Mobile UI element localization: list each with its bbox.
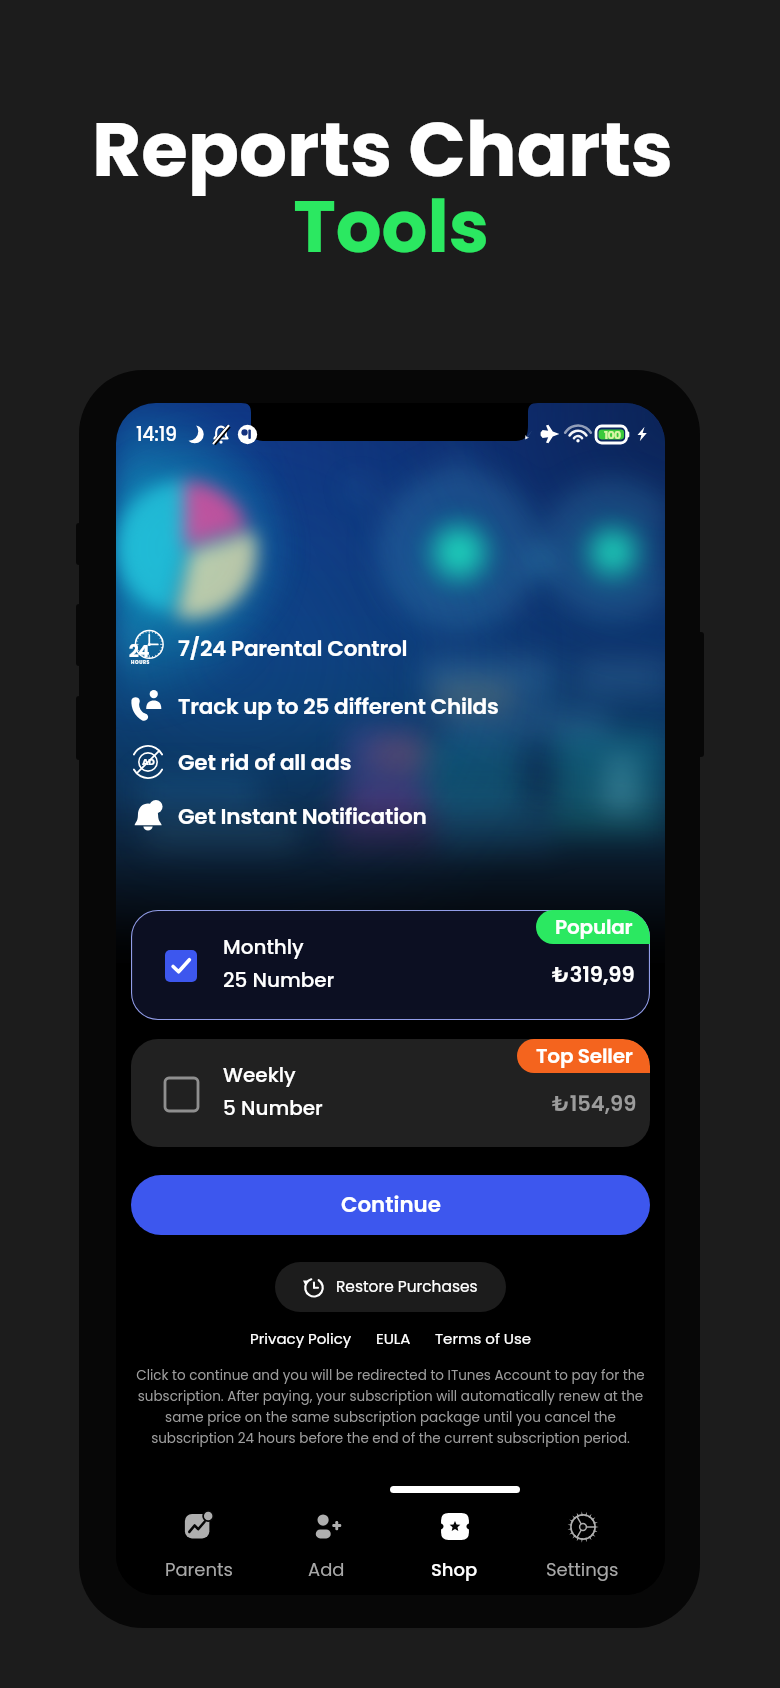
staticText: AD (142, 756, 155, 769)
button[interactable]: Continue (131, 1175, 650, 1235)
staticText: 24 (129, 639, 149, 663)
staticText: Monthly (223, 933, 304, 961)
staticText: 14:19 (136, 421, 177, 448)
staticText: Weekly (223, 1061, 296, 1089)
staticText: ₺319,99 (552, 960, 635, 989)
staticText: Shop (431, 1557, 478, 1582)
button[interactable]: Monthly (131, 910, 650, 1020)
staticText: 100 (604, 427, 621, 442)
staticText: ₺154,99 (552, 1089, 637, 1118)
staticText: Get rid of all ads (178, 747, 352, 777)
button[interactable]: Settings (519, 1510, 646, 1582)
staticText: Parents (165, 1557, 233, 1582)
staticText: Track up to 25 different Childs (178, 691, 499, 721)
staticText: Reports Charts (92, 97, 673, 203)
staticText: Tools (293, 176, 489, 277)
staticText: Get Instant Notification (178, 801, 427, 831)
staticText: HOURS (131, 659, 151, 665)
staticText: 5 Number (223, 1094, 323, 1122)
staticText: Top Seller (536, 1042, 633, 1070)
staticText: Continue (341, 1190, 441, 1220)
button[interactable]: Add (263, 1510, 390, 1582)
staticText: 7/24 Parental Control (178, 633, 408, 663)
button[interactable]: EULA (376, 1328, 411, 1349)
staticText: Add (308, 1557, 345, 1582)
staticText: Popular (555, 913, 633, 941)
button[interactable]: Restore Purchases (275, 1262, 506, 1312)
button[interactable]: Weekly (131, 1039, 650, 1147)
staticText: Settings (546, 1557, 619, 1582)
staticText: 25 Number (223, 966, 335, 994)
button[interactable]: Parents (135, 1510, 262, 1582)
button[interactable]: Shop (391, 1510, 518, 1582)
button[interactable]: Privacy Policy (250, 1328, 352, 1349)
button[interactable]: Terms of Use (435, 1328, 532, 1349)
staticText: Click to continue and you will be redire… (133, 1366, 648, 1448)
staticText: Restore Purchases (336, 1276, 478, 1298)
